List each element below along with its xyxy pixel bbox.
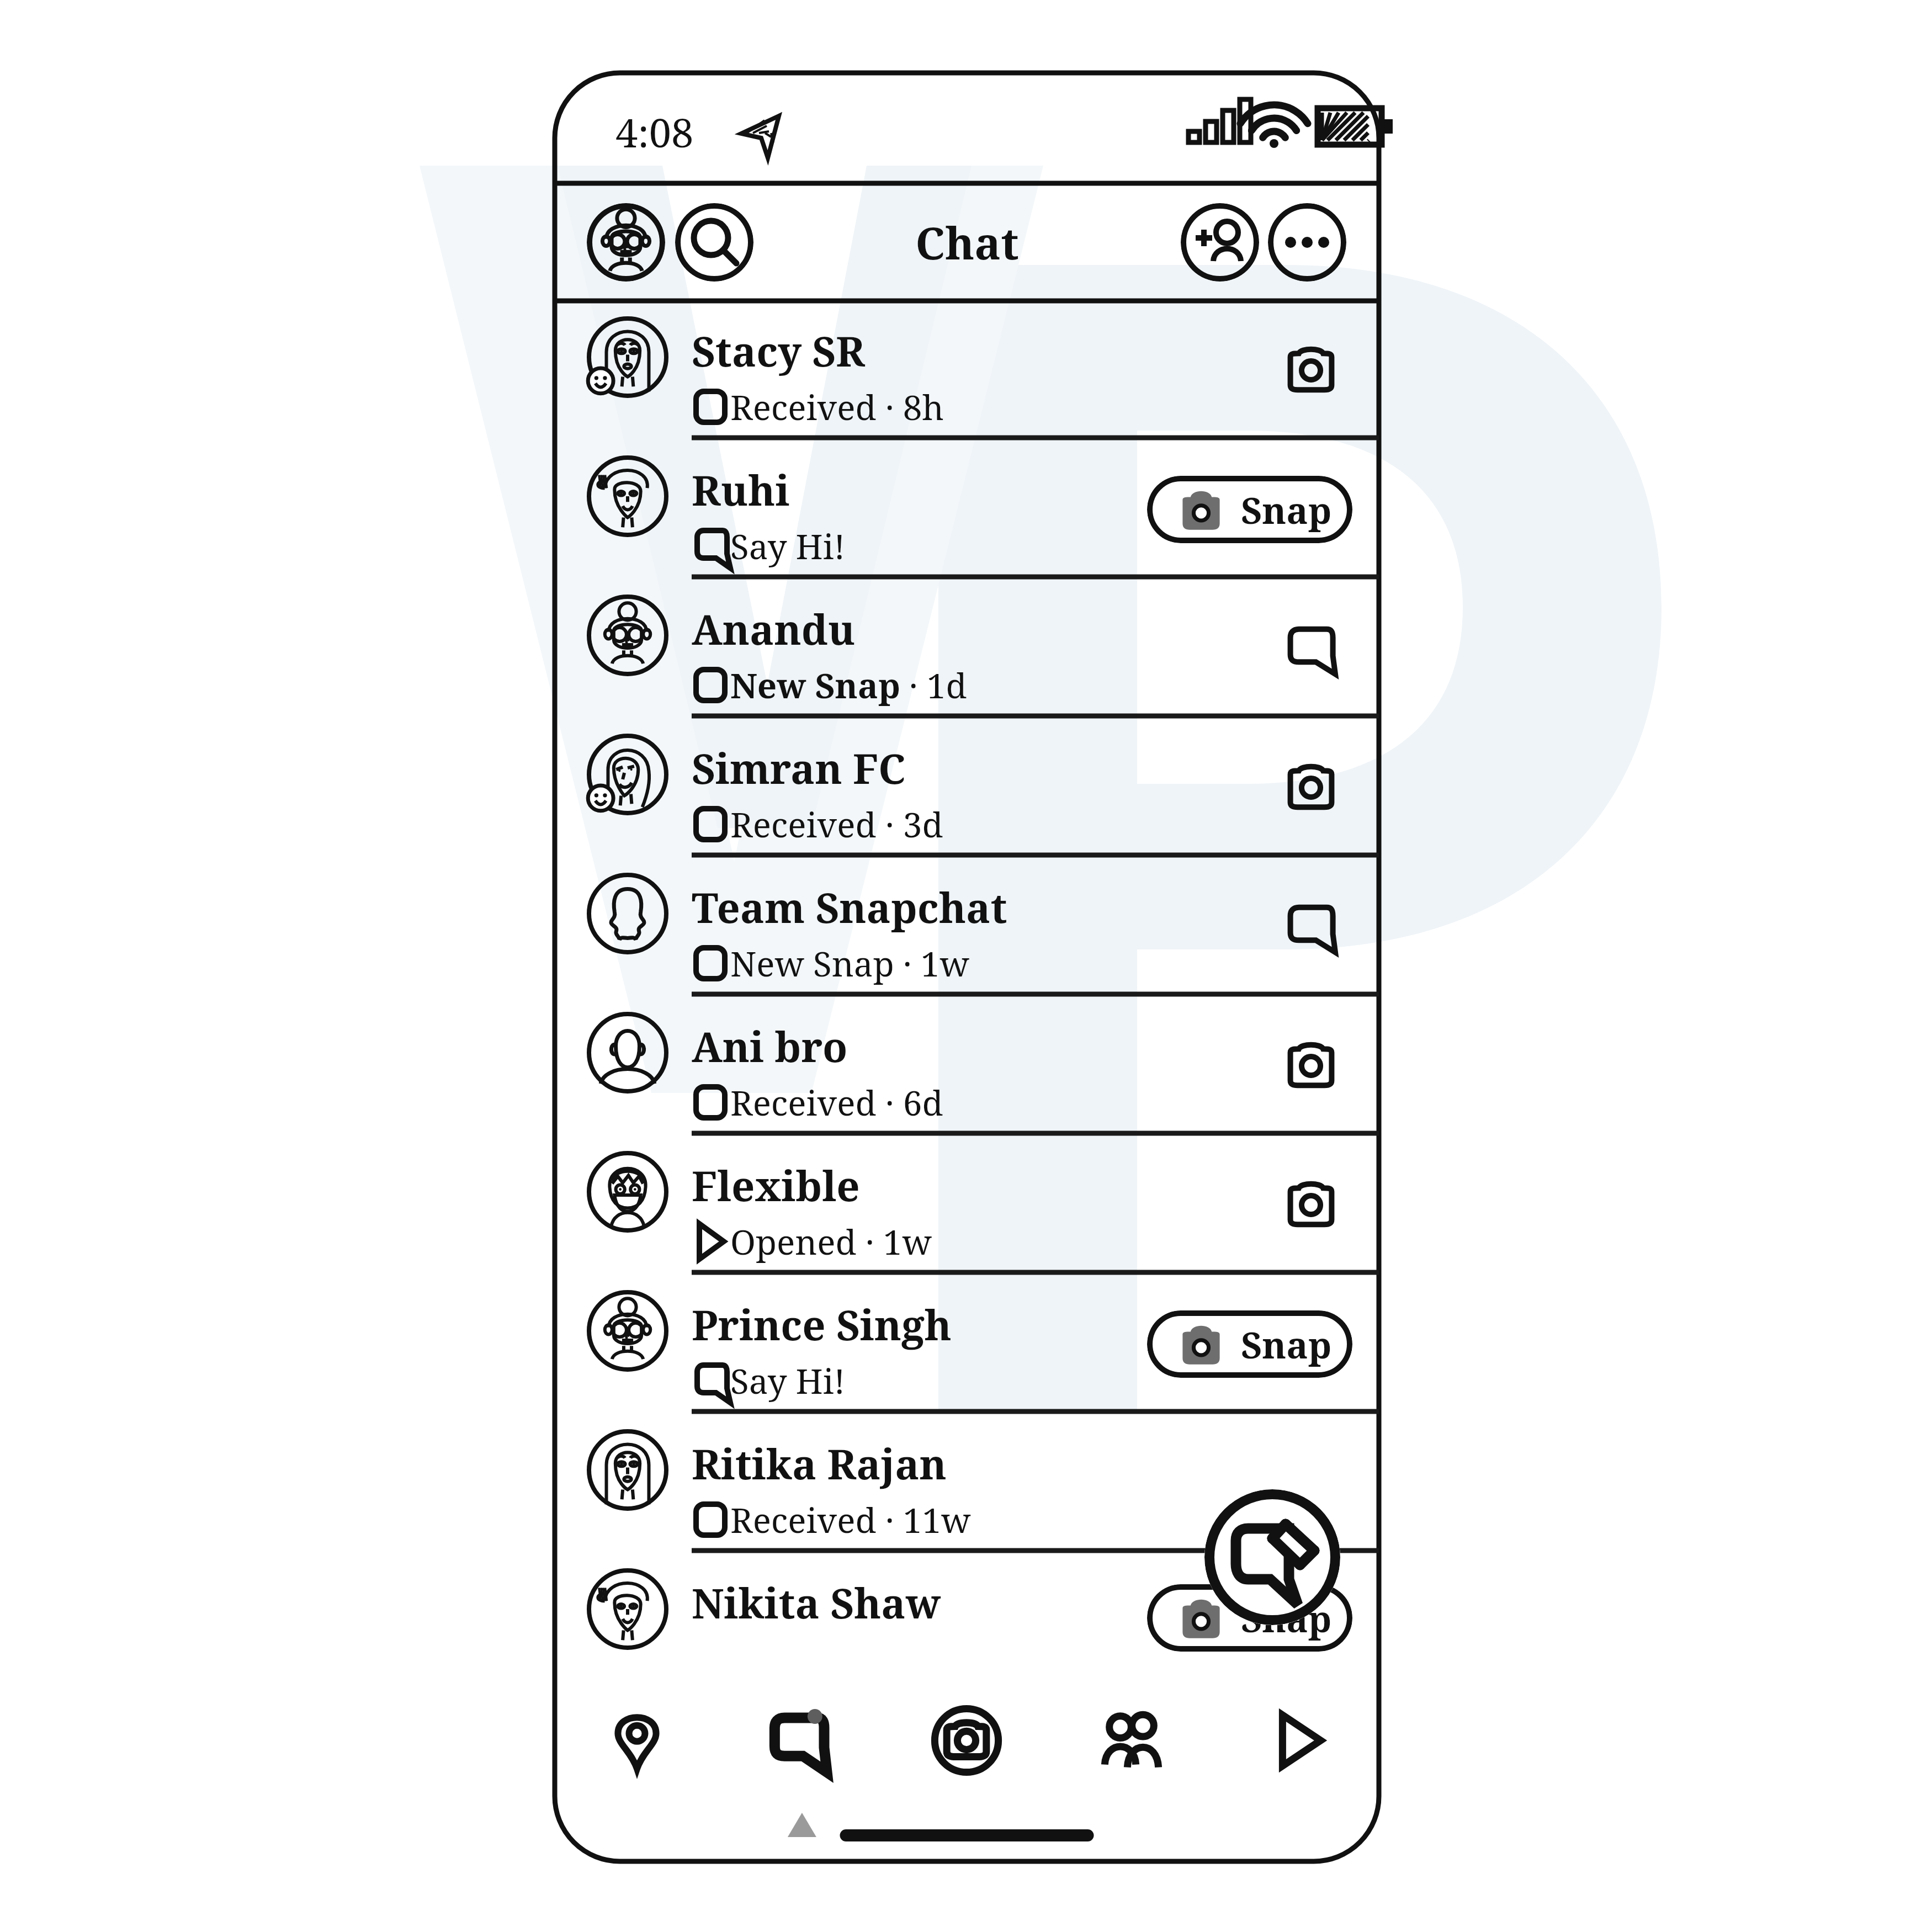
staticText: Prince Singh <box>692 1297 952 1352</box>
button[interactable]: Send snap <box>1281 757 1341 818</box>
staticText: New Snap <box>730 662 900 708</box>
staticText: Say Hi! <box>730 523 846 569</box>
button[interactable]: More options <box>1268 203 1346 282</box>
staticText: Team Snapchat <box>692 879 1007 935</box>
staticText: Opened <box>730 1218 857 1265</box>
staticText: Anandu <box>692 601 856 657</box>
button[interactable]: Snap <box>1147 1310 1352 1378</box>
staticText: Snap <box>1241 485 1332 534</box>
staticText: · 1w <box>857 1218 932 1265</box>
button[interactable]: Nikita Shaw <box>555 1553 1379 1682</box>
staticText: Received <box>730 1079 877 1126</box>
button[interactable]: Simran FC <box>555 718 1379 857</box>
button[interactable]: New chat <box>1204 1489 1340 1625</box>
button[interactable]: Send chat <box>1281 896 1341 957</box>
staticText: Chat <box>915 212 1019 272</box>
button[interactable]: Stacy SR <box>555 301 1379 440</box>
staticText: Snap <box>1241 1319 1332 1369</box>
button[interactable]: Prince Singh <box>555 1275 1379 1414</box>
button[interactable]: Snap <box>1147 476 1352 543</box>
staticText: Simran FC <box>692 740 906 796</box>
staticText: Received <box>730 801 877 847</box>
staticText: Ani bro <box>692 1018 848 1074</box>
staticText: Snap <box>1241 1593 1332 1643</box>
staticText: · 8h <box>877 384 944 430</box>
button[interactable]: Stories <box>1049 1682 1214 1798</box>
staticText: 4:08 <box>615 105 694 159</box>
button[interactable]: Ritika Rajan <box>555 1414 1379 1553</box>
button[interactable]: Profile <box>587 203 665 282</box>
staticText: Ruhi <box>692 462 790 518</box>
staticText: · 3d <box>877 801 943 847</box>
staticText: · 1w <box>894 940 969 986</box>
button[interactable]: Send snap <box>1281 340 1341 401</box>
button[interactable]: Send snap <box>1281 1175 1341 1235</box>
button[interactable]: Send chat <box>1281 618 1341 679</box>
staticText: Ritika Rajan <box>692 1436 947 1492</box>
staticText: · 6d <box>877 1079 943 1126</box>
button[interactable]: Team Snapchat <box>555 857 1379 996</box>
staticText: Received <box>730 384 877 430</box>
staticText: Nikita Shaw <box>692 1575 941 1631</box>
staticText: New Snap <box>730 940 894 986</box>
staticText: · 1d <box>900 662 967 708</box>
button[interactable]: Anandu <box>555 579 1379 718</box>
staticText: Flexible <box>692 1158 860 1213</box>
staticText: Stacy SR <box>692 323 865 379</box>
button[interactable]: Spotlight <box>1214 1682 1379 1798</box>
button[interactable]: Snap <box>1147 1584 1352 1652</box>
button[interactable]: Ruhi <box>555 440 1379 579</box>
button[interactable]: Map <box>555 1682 719 1798</box>
button[interactable]: Camera <box>884 1682 1049 1798</box>
staticText: Received <box>730 1496 877 1543</box>
button[interactable]: Add friend <box>1181 203 1259 282</box>
button[interactable]: Chat <box>719 1682 884 1798</box>
button[interactable]: Ani bro <box>555 996 1379 1135</box>
staticText: · 11w <box>877 1496 971 1543</box>
staticText: Say Hi! <box>730 1357 846 1404</box>
button[interactable]: Flexible <box>555 1135 1379 1275</box>
button[interactable]: Search <box>675 203 753 282</box>
button[interactable]: Send snap <box>1281 1036 1341 1096</box>
